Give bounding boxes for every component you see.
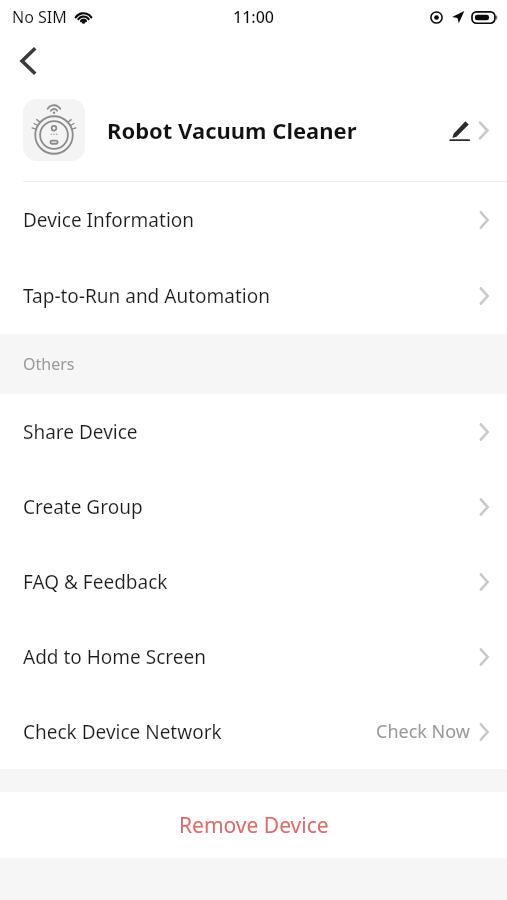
button[interactable]: Create Group [0,469,507,544]
staticText: Share Device [23,419,138,445]
staticText: Check Now [376,719,470,744]
staticText: Remove Device [179,811,329,840]
staticText: FAQ & Feedback [23,569,168,595]
button[interactable]: Tap-to-Run and Automation [0,258,507,334]
button[interactable]: Device Information [0,182,507,258]
staticText: Others [23,353,75,375]
button[interactable]: Add to Home Screen [0,619,507,694]
button[interactable]: Remove Device [0,792,507,858]
button[interactable]: Share Device [0,394,507,469]
staticText: Robot Vacuum Cleaner [107,115,442,145]
staticText: Device Information [23,207,195,233]
staticText: 11:00 [233,6,274,28]
staticText: Check Device Network [23,719,222,745]
staticText: No SIM [12,6,67,28]
staticText: Create Group [23,494,143,520]
button[interactable]: Check Device Network [0,694,507,769]
button[interactable]: Robot Vacuum Cleaner [0,88,507,172]
button[interactable]: FAQ & Feedback [0,544,507,619]
button[interactable]: Back [8,41,48,81]
button[interactable]: Edit device name [442,113,476,147]
staticText: Tap-to-Run and Automation [23,283,270,309]
staticText: Add to Home Screen [23,644,206,670]
